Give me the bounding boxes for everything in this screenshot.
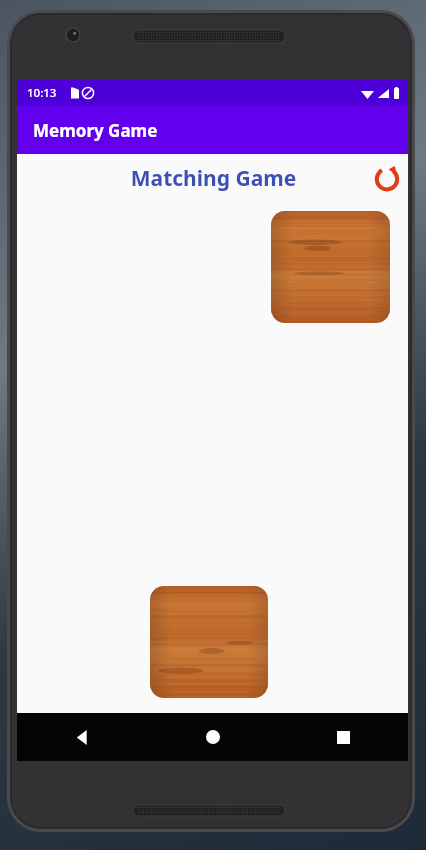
button[interactable]: Home	[148, 713, 278, 761]
button[interactable]: Memory card	[150, 586, 268, 698]
button[interactable]: Memory card	[271, 211, 390, 323]
staticText: Matching Game	[61, 164, 366, 193]
other: Refresh	[372, 163, 402, 193]
button[interactable]: Restart game	[366, 157, 408, 199]
staticText: Memory Game	[33, 119, 158, 142]
staticText: 10:13	[27, 85, 57, 101]
button[interactable]: Recent apps	[278, 713, 408, 761]
button[interactable]: Back	[17, 713, 148, 761]
